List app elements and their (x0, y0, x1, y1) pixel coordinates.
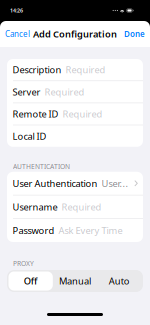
button[interactable]: Username (7, 195, 143, 218)
button[interactable]: Description (7, 59, 143, 80)
button[interactable]: Auto (97, 271, 141, 290)
button[interactable]: Off (8, 271, 53, 290)
button[interactable]: Manual (53, 271, 97, 290)
staticText: Server (12, 86, 40, 98)
staticText: Local ID (12, 130, 46, 142)
staticText: Add Configuration (33, 28, 117, 40)
staticText: Username (12, 201, 57, 213)
staticText: Required (44, 86, 84, 98)
button[interactable]: Cancel (0, 23, 35, 45)
staticText: AUTHENTICATION (13, 162, 70, 171)
button[interactable]: Local ID (7, 125, 143, 147)
button[interactable]: User Authentication (7, 172, 143, 195)
staticText: Manual (59, 275, 91, 287)
staticText: Auto (109, 275, 130, 287)
staticText: Remote ID (12, 108, 58, 120)
button[interactable]: Done (119, 23, 150, 45)
staticText: User... (101, 177, 128, 189)
staticText: Password (12, 224, 54, 237)
staticText: Cancel (5, 29, 30, 39)
staticText: Required (62, 108, 102, 120)
staticText: User Authentication (12, 177, 97, 189)
button[interactable]: Password (7, 219, 143, 242)
staticText: Required (65, 64, 105, 76)
button[interactable]: Server (7, 81, 143, 103)
staticText: PROXY (13, 259, 34, 268)
staticText: 14:26 (10, 7, 23, 14)
staticText: Off (24, 275, 38, 287)
staticText: Description (12, 64, 61, 76)
button[interactable]: Remote ID (7, 103, 143, 125)
staticText: Required (61, 201, 101, 213)
staticText: Ask Every Time (58, 224, 122, 237)
staticText: Done (124, 29, 145, 39)
